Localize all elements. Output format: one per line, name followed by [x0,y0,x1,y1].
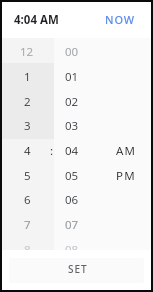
staticText: 4 [24,143,31,157]
button[interactable]: SET [9,258,144,283]
staticText: 04 [65,143,79,157]
button[interactable]: 8 [2,242,53,250]
staticText: AM [116,143,137,157]
button[interactable]: 4 [2,143,53,157]
staticText: 6 [24,192,31,206]
button[interactable]: 04 [62,143,82,157]
staticText: 4:04 AM [14,12,59,28]
staticText: 08 [65,242,79,250]
button[interactable]: 07 [62,217,82,231]
staticText: 03 [65,118,79,132]
staticText: 00 [65,44,79,58]
staticText: NOW [105,12,136,27]
staticText: 1 [24,69,31,83]
staticText: 12 [20,44,34,58]
staticText: 02 [65,94,79,108]
button[interactable]: 00 [62,44,82,58]
staticText: 2 [24,94,31,108]
staticText: : [50,143,54,157]
button[interactable]: NOW [90,4,151,35]
button[interactable]: 3 [2,118,53,132]
button[interactable]: 12 [2,44,53,58]
button[interactable]: PM [115,168,137,182]
staticText: 06 [65,192,79,206]
button[interactable]: 03 [62,118,82,132]
button[interactable]: 08 [62,242,82,250]
button[interactable]: 2 [2,94,53,108]
staticText: 7 [24,217,31,231]
button[interactable]: 1 [2,69,53,83]
staticText: 01 [65,69,79,83]
staticText: 07 [65,217,79,231]
staticText: 05 [65,168,79,182]
staticText: 5 [24,168,31,182]
staticText: 3 [24,118,31,132]
staticText: PM [116,168,136,182]
staticText: 8 [24,242,31,250]
button[interactable]: 05 [62,168,82,182]
staticText: SET [68,262,88,276]
button[interactable]: 7 [2,217,53,231]
button[interactable]: 02 [62,94,82,108]
button[interactable]: 01 [62,69,82,83]
button[interactable]: 6 [2,192,53,206]
button[interactable]: 5 [2,168,53,182]
button[interactable]: AM [115,143,137,157]
button[interactable]: 06 [62,192,82,206]
